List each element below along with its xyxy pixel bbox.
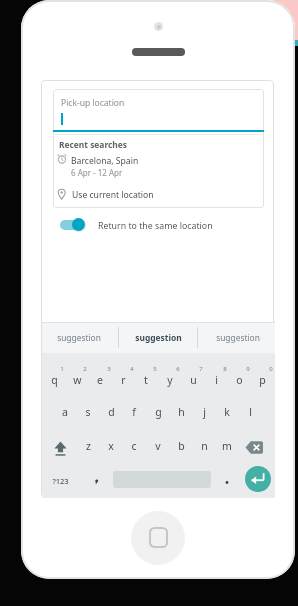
staticText: 3 [107, 365, 111, 373]
staticText: 5 [153, 365, 157, 373]
staticText: m [222, 439, 232, 453]
staticText: 2 [83, 365, 87, 373]
staticText: s [85, 405, 91, 419]
staticText: 8 [223, 365, 227, 373]
staticText: 7 [199, 365, 203, 373]
staticText: j [203, 405, 206, 419]
staticText: y [167, 373, 173, 387]
staticText: Recent searches [59, 139, 127, 150]
staticText: 9 [246, 365, 250, 373]
staticText: w [73, 373, 82, 387]
staticText: n [201, 439, 208, 453]
staticText: u [190, 373, 197, 387]
staticText: f [132, 405, 136, 419]
staticText: 1 [60, 365, 64, 373]
staticText: Return to the same location [98, 220, 213, 232]
staticText: suggestion [216, 332, 260, 343]
staticText: 0 [269, 365, 273, 373]
staticText: k [224, 405, 230, 419]
staticText: e [97, 373, 103, 387]
staticText: b [178, 439, 185, 453]
staticText: l [249, 405, 252, 419]
staticText: p [259, 373, 266, 387]
staticText: g [155, 405, 162, 419]
staticText: ?123 [52, 476, 69, 486]
staticText: suggestion [135, 332, 182, 343]
staticText: r [121, 373, 126, 387]
staticText: a [62, 405, 68, 419]
staticText: suggestion [57, 332, 101, 343]
staticText: t [144, 373, 148, 387]
staticText: Use current location [72, 189, 154, 201]
staticText: d [108, 405, 115, 419]
staticText: 6 Apr - 12 Apr [71, 167, 123, 178]
staticText: o [236, 373, 243, 387]
staticText: h [178, 405, 185, 419]
staticText: z [86, 439, 91, 453]
staticText: q [51, 373, 58, 387]
staticText: i [215, 373, 218, 387]
staticText: 4 [130, 365, 134, 373]
staticText: Pick-up location [61, 97, 125, 109]
staticText: v [155, 439, 161, 453]
staticText: c [131, 439, 137, 453]
staticText: Barcelona, Spain [71, 155, 139, 167]
staticText: 6 [176, 365, 180, 373]
staticText: x [108, 439, 114, 453]
